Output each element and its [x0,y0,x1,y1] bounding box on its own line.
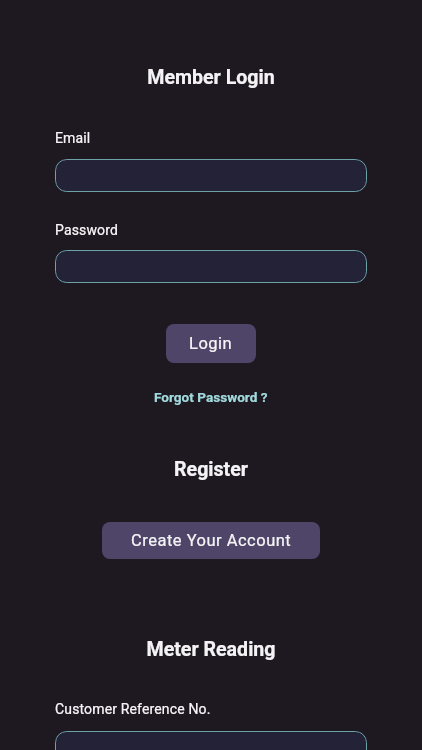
staticText: Create Your Account [131,531,292,550]
staticText: Member Login [0,66,422,89]
button[interactable]: Customer reference number input field [55,731,367,750]
staticText: Register [0,458,422,481]
staticText: Email [55,130,91,146]
button[interactable]: Create Your Account [102,522,320,559]
staticText: Meter Reading [0,638,422,661]
button[interactable]: Forgot Password ? [154,389,268,405]
staticText: Login [189,334,233,353]
staticText: Password [55,222,119,238]
button[interactable]: Login [166,324,256,363]
button[interactable]: Email address input field [55,159,367,192]
staticText: Forgot Password ? [154,389,268,405]
button[interactable]: Password input field [55,250,367,283]
staticText: Customer Reference No. [55,701,211,717]
